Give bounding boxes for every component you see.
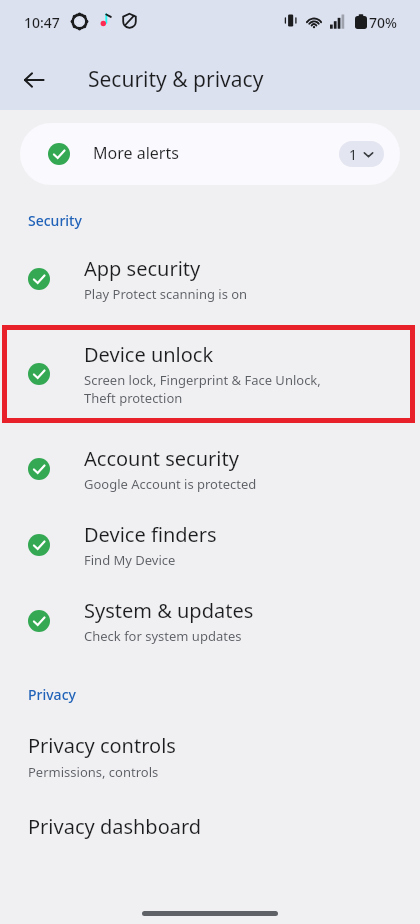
staticText: Screen lock, Fingerprint & Face Unlock, … [84,371,321,407]
staticText: 1 [349,145,358,164]
staticText: Check for system updates [84,627,242,645]
button[interactable]: Back [12,58,56,102]
staticText: 70% [369,13,397,32]
button[interactable]: Privacy controls [0,732,420,781]
button[interactable]: More alerts [20,123,400,185]
button[interactable]: Device unlock [2,325,415,423]
staticText: App security [84,255,201,282]
staticText: Device finders [84,521,217,548]
staticText: Account security [84,445,239,472]
staticText: Privacy controls [28,732,176,759]
staticText: Google Account is protected [84,475,257,493]
staticText: Permissions, controls [28,763,159,781]
staticText: System & updates [84,597,254,624]
staticText: Privacy dashboard [28,813,202,840]
button[interactable]: Device finders [0,521,420,569]
button[interactable]: App security [0,255,420,303]
staticText: More alerts [93,142,179,164]
button[interactable]: Account security [0,445,420,493]
staticText: Play Protect scanning is on [84,285,248,303]
button[interactable]: 1 [339,141,384,167]
button[interactable]: System & updates [0,597,420,645]
staticText: 10:47 [24,13,60,32]
button[interactable]: Privacy dashboard [0,813,420,840]
staticText: Security & privacy [88,65,264,94]
staticText: Device unlock [84,341,214,368]
staticText: Find My Device [84,551,176,569]
staticText: Security [28,211,82,230]
staticText: Privacy [28,685,76,704]
